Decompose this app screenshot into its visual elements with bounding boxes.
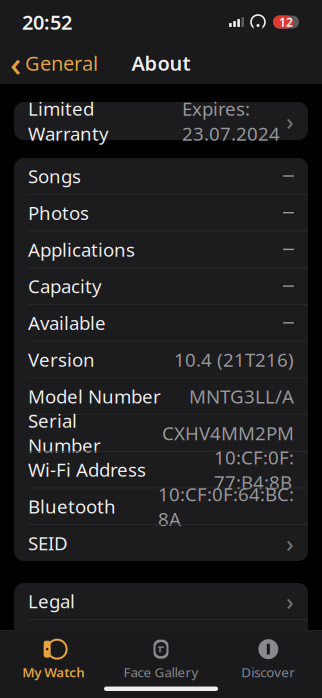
button[interactable]: Serial Number [14, 415, 308, 451]
staticText: Discover [241, 663, 295, 681]
button[interactable]: Limited Warranty [14, 102, 308, 140]
staticText: Regulatory [28, 625, 125, 650]
staticText: 10.4 (21T216) [174, 347, 294, 372]
staticText: 10:CF:0F:64:BC:8A [158, 481, 294, 531]
staticText: 10:CF:0F:77:B4:8B [214, 445, 294, 494]
staticText: SEID [28, 531, 68, 555]
staticText: Songs [28, 164, 81, 188]
staticText: Serial Number [28, 408, 101, 458]
button[interactable]: My Watch [0, 636, 107, 682]
staticText: Applications [28, 237, 135, 262]
staticText: Bluetooth [28, 494, 116, 519]
button[interactable]: Available [14, 305, 308, 341]
staticText: Model Number [28, 384, 161, 409]
button[interactable]: Model Number [14, 378, 308, 414]
staticText: Version [28, 347, 95, 372]
staticText: › [286, 105, 294, 137]
button[interactable]: Legal [14, 583, 308, 619]
staticText: › [286, 585, 294, 617]
staticText: MNTG3LL/A [189, 384, 294, 409]
staticText: CXHV4MM2PM [162, 420, 294, 445]
staticText: Photos [28, 200, 89, 225]
staticText: Wi-Fi Address [28, 457, 146, 482]
button[interactable]: Capacity [14, 268, 308, 304]
staticText: ‹ [10, 40, 21, 86]
staticText: About [131, 50, 190, 76]
staticText: 12 [279, 14, 293, 30]
staticText: General [25, 50, 98, 76]
button[interactable]: ‹ [0, 44, 108, 82]
staticText: Expires: 23.07.2024 [182, 96, 280, 146]
staticText: Capacity [28, 274, 102, 298]
staticText: Limited Warranty [28, 96, 109, 146]
button[interactable]: Applications [14, 231, 308, 267]
staticText: 20:52 [22, 9, 72, 35]
staticText: Legal [28, 589, 75, 613]
staticText: › [286, 527, 294, 559]
button[interactable]: Songs [14, 158, 308, 194]
staticText: My Watch [22, 663, 85, 681]
button[interactable]: SEID [14, 525, 308, 561]
staticText: Available [28, 310, 106, 335]
button[interactable]: Photos [14, 195, 308, 231]
button[interactable]: Wi-Fi Address [14, 452, 308, 488]
button[interactable]: Bluetooth [14, 488, 308, 524]
button[interactable]: Discover [215, 636, 322, 682]
button[interactable]: Face Gallery [107, 636, 215, 682]
button[interactable]: Regulatory [14, 620, 308, 656]
staticText: Face Gallery [123, 663, 198, 681]
button[interactable]: Version [14, 341, 308, 377]
